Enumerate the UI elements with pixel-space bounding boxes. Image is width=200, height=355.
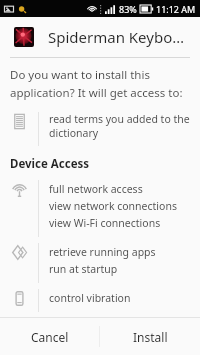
staticText: Cancel [31, 329, 69, 345]
button[interactable]: Cancel [0, 318, 99, 355]
other: Dictionary permission [11, 113, 28, 130]
staticText: dictionary [49, 126, 99, 140]
staticText: application? It will get access to: [10, 85, 183, 101]
staticText: 83% [119, 3, 137, 15]
staticText: Install [133, 329, 168, 345]
button[interactable]: Vibration permission [0, 289, 200, 312]
button[interactable]: Dictionary permission [0, 112, 200, 146]
staticText: run at startup [49, 262, 118, 276]
button[interactable]: Network permission [0, 180, 200, 237]
staticText: read terms you added to the [49, 112, 190, 126]
staticText: full network access [49, 182, 143, 196]
other: Running apps permission [11, 244, 28, 261]
staticText: 11:12 AM [156, 3, 196, 15]
staticText: Spiderman Keyboar… [48, 27, 190, 47]
staticText: view network connections [49, 199, 177, 213]
other: Vibration permission [11, 290, 28, 307]
staticText: Device Access [10, 156, 90, 172]
staticText: control vibration [49, 291, 131, 305]
button[interactable]: Running apps permission [0, 243, 200, 283]
button[interactable]: Install [100, 318, 200, 355]
other: Network permission [11, 181, 28, 198]
staticText: view Wi-Fi connections [49, 216, 161, 230]
staticText: Do you want to install this [10, 67, 150, 83]
staticText: retrieve running apps [49, 245, 156, 259]
